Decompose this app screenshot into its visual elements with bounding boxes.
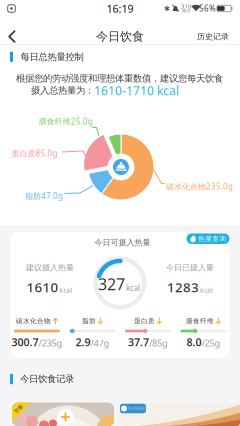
staticText: kcal bbox=[126, 282, 140, 293]
staticText: 16:19 bbox=[106, 1, 133, 16]
staticText: 今日已摄入量 bbox=[166, 263, 214, 272]
staticText: kcal bbox=[200, 286, 213, 295]
staticText: 8.0 bbox=[186, 335, 201, 349]
staticText: /25g bbox=[201, 337, 220, 349]
staticText: 摄入总热量为： bbox=[31, 85, 94, 96]
staticText: 蛋白质85.0g bbox=[12, 148, 58, 159]
button[interactable]: 饮食记录 bbox=[119, 402, 240, 426]
staticText: KB/S bbox=[182, 8, 190, 13]
staticText: /85g bbox=[149, 337, 168, 349]
staticText: /47g bbox=[90, 337, 109, 349]
staticText: 今日饮食记录 bbox=[20, 373, 74, 385]
button[interactable]: 早餐记录 bbox=[12, 402, 114, 426]
staticText: 56% bbox=[199, 3, 216, 14]
staticText: 早餐 bbox=[14, 406, 24, 412]
staticText: 膳食纤维25.0g bbox=[39, 116, 93, 127]
staticText: 脂肪 bbox=[82, 317, 96, 325]
staticText: 膳食纤维 bbox=[186, 317, 214, 325]
staticText: 1610-1710 kcal bbox=[94, 82, 179, 98]
staticText: 3.10 bbox=[181, 3, 191, 10]
staticText: 1610 bbox=[26, 278, 58, 296]
staticText: 碳水化合物235.0g bbox=[166, 181, 233, 192]
staticText: 历史记录 bbox=[197, 32, 229, 41]
staticText: 每日总热量控制 bbox=[20, 51, 83, 63]
staticText: 脂肪47.0g bbox=[25, 191, 63, 201]
staticText: /235g bbox=[38, 337, 62, 349]
staticText: 327 bbox=[98, 273, 125, 295]
staticText: 蛋白质 bbox=[134, 317, 155, 325]
staticText: 300.7 bbox=[11, 335, 38, 349]
button[interactable]: 热量查询 bbox=[186, 233, 229, 244]
staticText: 建议摄入热量 bbox=[26, 263, 74, 272]
staticText: 37.7 bbox=[128, 335, 149, 349]
staticText: 闷·手机网 bbox=[128, 406, 145, 411]
staticText: 根据您的劳动强度和理想体重数值，建议您每天饮食 bbox=[16, 73, 223, 84]
staticText: 1283 bbox=[167, 278, 199, 296]
staticText: 热量查询 bbox=[198, 235, 226, 243]
staticText: 今日饮食 bbox=[96, 29, 144, 44]
staticText: 碳水化合物 bbox=[16, 317, 51, 325]
staticText: 2.9 bbox=[75, 335, 90, 349]
button[interactable]: 历史记录 bbox=[197, 28, 229, 45]
staticText: 今日可摄入热量 bbox=[94, 238, 150, 247]
button[interactable]: Back bbox=[5, 28, 21, 44]
staticText: kcal bbox=[59, 286, 72, 295]
